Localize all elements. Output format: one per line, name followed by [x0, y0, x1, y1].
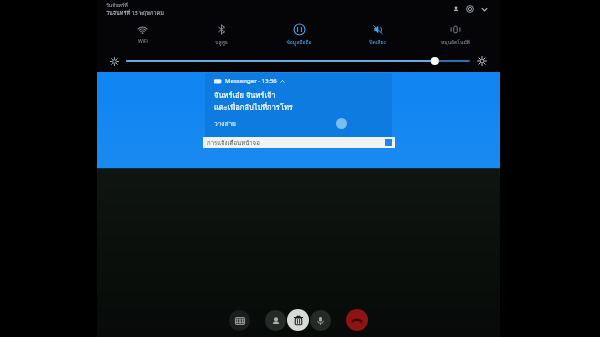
- button[interactable]: วางสาย: [214, 119, 240, 129]
- button[interactable]: Keypad: [229, 310, 250, 331]
- staticText: WiFi: [138, 38, 148, 45]
- button[interactable]: การแจ้งเตือนหน้าจอ: [203, 137, 395, 148]
- button[interactable]: Messenger · 13:56: [205, 73, 392, 140]
- staticText: บลูทูธ: [215, 38, 228, 46]
- staticText: ข้อมูลมือถือ: [286, 38, 312, 46]
- button[interactable]: Hang up: [346, 309, 368, 331]
- button[interactable]: WiFi: [103, 21, 182, 47]
- button[interactable]: Toggle: [336, 118, 347, 129]
- staticText: วางสาย: [214, 119, 236, 129]
- button[interactable]: Mute: [310, 310, 331, 331]
- button[interactable]: Brightness: [127, 55, 469, 67]
- button[interactable]: Settings: [463, 2, 477, 16]
- button[interactable]: User: [449, 2, 463, 16]
- button[interactable]: Add person: [265, 310, 286, 331]
- staticText: จันทร์เอ๋ย จันทร์เจ้า: [214, 89, 276, 101]
- button[interactable]: หมุนอัตโนมัติ: [416, 21, 494, 48]
- button[interactable]: บลูทูธ: [182, 21, 260, 48]
- button[interactable]: Expand: [477, 2, 491, 16]
- staticText: ปิดเสียง: [369, 38, 386, 46]
- button[interactable]: ปิดเสียง: [338, 21, 416, 48]
- staticText: แตะเพื่อกลับไปที่การโทร: [214, 101, 293, 113]
- button[interactable]: End video: [287, 309, 309, 331]
- staticText: การแจ้งเตือนหน้าจอ: [207, 138, 260, 148]
- button[interactable]: ข้อมูลมือถือ: [260, 21, 338, 48]
- staticText: Messenger · 13:56: [225, 77, 277, 85]
- staticText: วันจันทร์ที่ 13 พฤษภาคม: [106, 9, 164, 18]
- staticText: วันจันทร์ที่: [106, 1, 128, 9]
- staticText: หมุนอัตโนมัติ: [441, 38, 470, 46]
